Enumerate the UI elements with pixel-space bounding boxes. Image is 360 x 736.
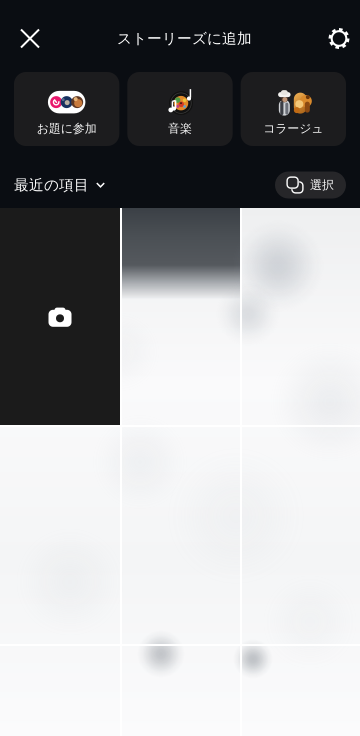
button[interactable]: Settings (318, 16, 360, 60)
button[interactable]: コラージュ (241, 72, 346, 146)
button[interactable]: 最近の項目 (14, 168, 105, 202)
staticText: 選択 (310, 178, 334, 192)
staticText: お題に参加 (37, 121, 97, 136)
staticText: コラージュ (263, 121, 323, 136)
staticText: ストーリーズに追加 (117, 29, 252, 47)
button[interactable]: Close (9, 16, 51, 60)
button[interactable]: 音楽 (127, 72, 233, 146)
staticText: 音楽 (168, 121, 192, 136)
button[interactable]: Camera (0, 208, 120, 425)
staticText: 最近の項目 (14, 176, 89, 194)
button[interactable]: 選択 (275, 171, 346, 198)
button[interactable]: お題に参加 (14, 72, 119, 146)
